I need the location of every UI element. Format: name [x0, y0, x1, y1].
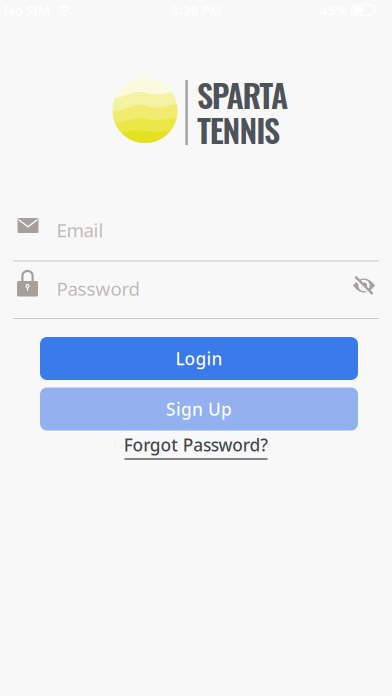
staticText: Password: [56, 276, 139, 301]
staticText: SPARTA: [197, 71, 288, 118]
staticText: Forgot Password?: [124, 433, 268, 456]
staticText: TENNIS: [197, 106, 280, 153]
staticText: Sign Up: [166, 397, 232, 420]
button[interactable]: Forgot Password?: [124, 433, 268, 460]
button[interactable]: Sign Up: [40, 387, 358, 430]
button[interactable]: Login: [40, 337, 358, 380]
button[interactable]: Show password: [352, 273, 376, 297]
staticText: Login: [175, 347, 222, 370]
staticText: Email: [56, 218, 103, 242]
